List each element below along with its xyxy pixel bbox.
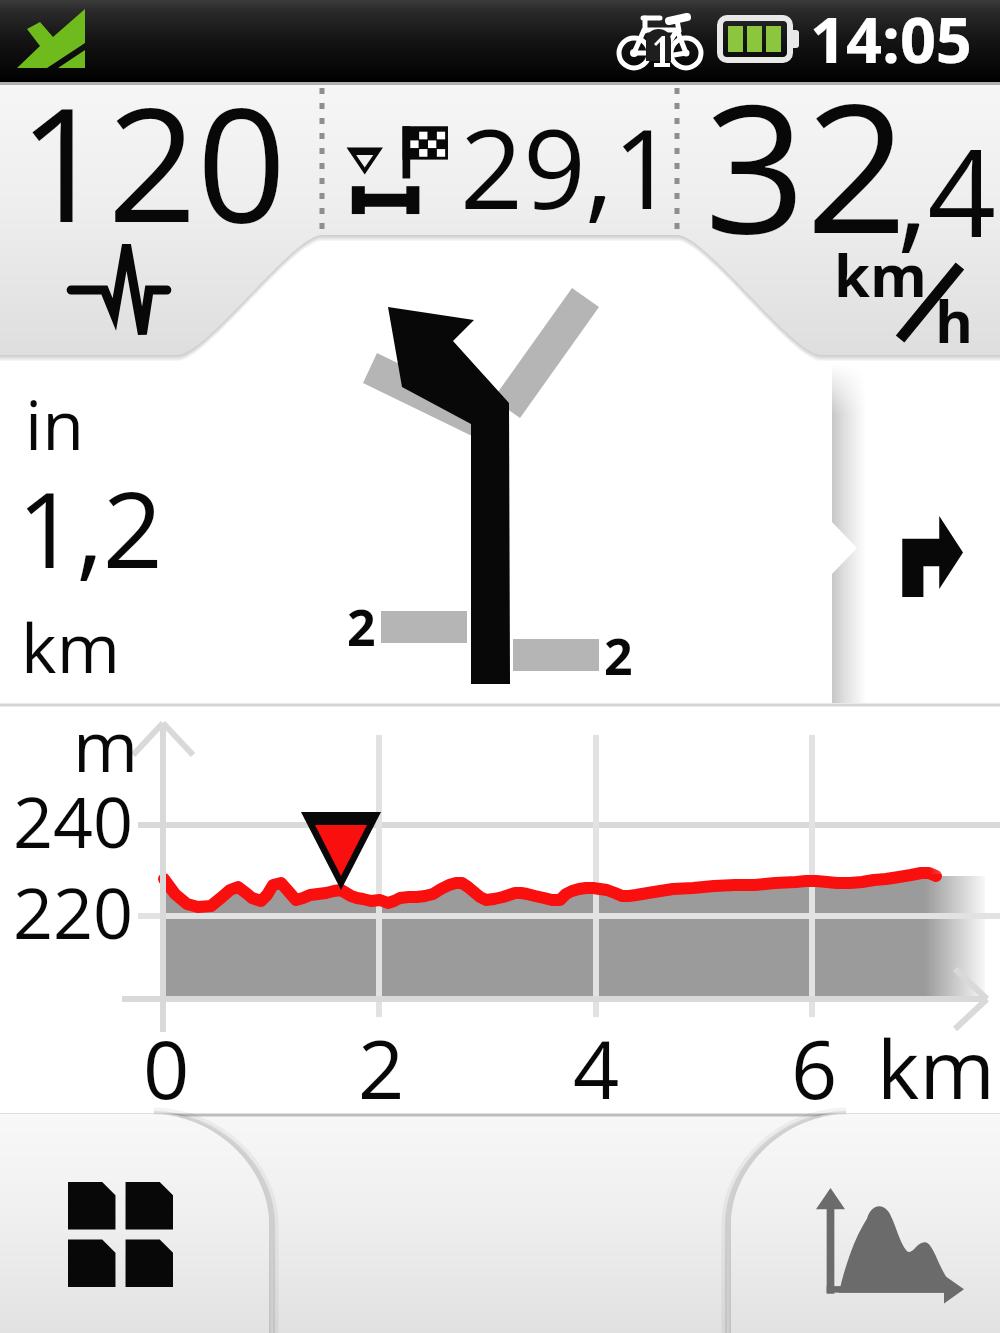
staticText: 0 bbox=[143, 1012, 190, 1122]
staticText: 4 bbox=[573, 1012, 620, 1122]
button[interactable]: Elevation profile chart bbox=[0, 706, 1000, 1114]
staticText: km bbox=[21, 600, 120, 693]
staticText: 2 bbox=[347, 593, 376, 661]
staticText: 2 bbox=[358, 1012, 405, 1122]
staticText: ,4 bbox=[898, 109, 997, 272]
staticText: 29,1 bbox=[460, 91, 676, 241]
button[interactable]: Heart rate 120 bbox=[0, 82, 322, 235]
staticText: km bbox=[834, 235, 927, 314]
staticText: 2 bbox=[604, 622, 633, 690]
staticText: m bbox=[73, 697, 139, 792]
button[interactable]: Following turn, right bbox=[833, 356, 1000, 705]
staticText: 1,2 bbox=[17, 456, 163, 599]
button[interactable]: Dashboard bbox=[0, 1114, 272, 1333]
staticText: h bbox=[935, 281, 974, 360]
staticText: 220 bbox=[13, 864, 134, 959]
staticText: 6 bbox=[791, 1012, 838, 1122]
staticText: km bbox=[877, 1012, 995, 1122]
staticText: 120 bbox=[18, 53, 287, 268]
button[interactable]: Elevation profile bbox=[728, 1114, 1000, 1333]
staticText: 32 bbox=[704, 43, 908, 285]
button[interactable]: Next turn in 1,2 km bbox=[0, 356, 833, 705]
staticText: 240 bbox=[13, 773, 134, 868]
button[interactable]: Speed 32,4 km/h bbox=[677, 82, 1000, 235]
staticText: in bbox=[25, 377, 84, 470]
button[interactable]: Distance to destination 29,1 km bbox=[322, 82, 677, 235]
staticText: 14:05 bbox=[810, 0, 972, 78]
